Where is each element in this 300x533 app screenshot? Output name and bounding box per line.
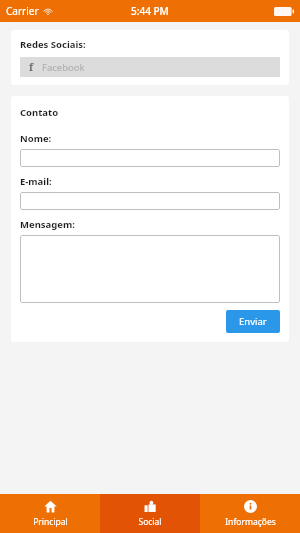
button[interactable]	[20, 235, 280, 303]
staticText: 5:44 PM	[131, 4, 169, 18]
staticText: Contato	[20, 106, 59, 119]
other: Informações	[244, 500, 257, 513]
button[interactable]: Enviar	[226, 310, 280, 333]
staticText: Enviar	[239, 315, 267, 328]
button[interactable]: f	[20, 57, 280, 77]
staticText: Social	[138, 516, 162, 528]
staticText: Redes Sociais:	[20, 38, 86, 51]
button[interactable]	[20, 192, 280, 210]
button[interactable]	[20, 149, 280, 167]
staticText: Principal	[33, 516, 68, 528]
staticText: E-mail:	[20, 175, 52, 188]
staticText: Informações	[225, 516, 276, 528]
staticText: Nome:	[20, 132, 52, 145]
staticText: f	[29, 60, 34, 74]
staticText: Mensagem:	[20, 218, 75, 231]
button[interactable]: Principal	[0, 494, 100, 533]
other: Social	[144, 500, 157, 513]
other: Principal	[44, 500, 57, 513]
button[interactable]: Social	[100, 494, 200, 533]
staticText: Carrier	[6, 4, 39, 18]
staticText: Facebook	[42, 61, 85, 74]
button[interactable]: Informações	[200, 494, 300, 533]
